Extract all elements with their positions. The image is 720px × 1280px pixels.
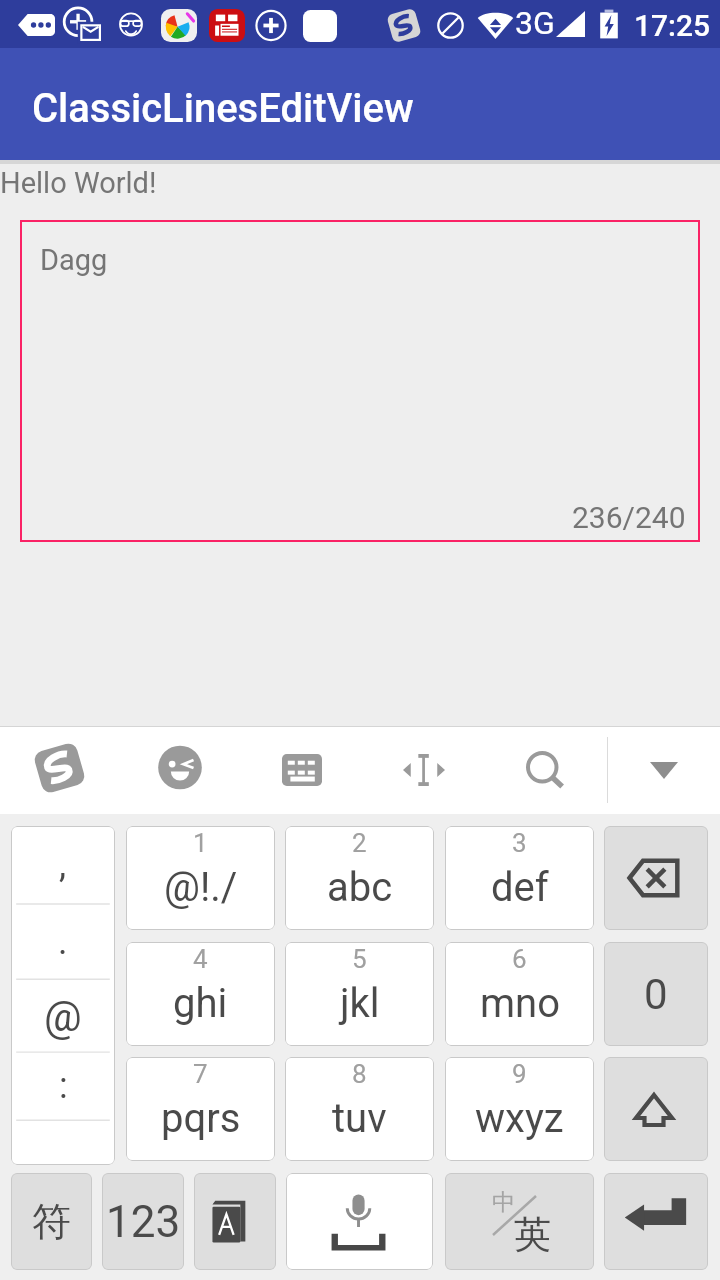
- button[interactable]: 123: [102, 1173, 184, 1270]
- button[interactable]: 0: [604, 942, 708, 1046]
- button[interactable]: Sogou input: [32, 742, 87, 794]
- staticText: tuv: [332, 1095, 387, 1142]
- button[interactable]: 6: [445, 942, 594, 1046]
- button[interactable]: Shift: [604, 1057, 708, 1161]
- staticText: ,: [59, 844, 67, 886]
- staticText: .: [58, 921, 68, 963]
- button[interactable]: 1: [126, 826, 275, 930]
- staticText: ClassicLinesEditView: [32, 85, 414, 132]
- button[interactable]: Space: [286, 1173, 433, 1270]
- staticText: ghi: [173, 980, 228, 1027]
- button[interactable]: 4: [126, 942, 275, 1046]
- button[interactable]: Move cursor: [403, 754, 445, 786]
- button[interactable]: Chinese English toggle: [445, 1173, 594, 1270]
- staticText: Hello World!: [0, 166, 157, 200]
- staticText: :: [59, 1065, 68, 1107]
- button[interactable]: Punctuation: [11, 826, 115, 1165]
- staticText: 8: [352, 1059, 367, 1089]
- button[interactable]: Backspace: [604, 826, 708, 930]
- staticText: 2: [352, 828, 367, 858]
- button[interactable]: Enter: [604, 1173, 708, 1270]
- staticText: 7: [193, 1059, 208, 1089]
- staticText: 3G: [515, 4, 555, 42]
- staticText: @: [44, 992, 82, 1041]
- staticText: Dagg: [40, 243, 108, 277]
- button[interactable]: 5: [285, 942, 434, 1046]
- staticText: 4: [193, 944, 208, 974]
- staticText: @!./: [164, 864, 238, 911]
- staticText: 6: [512, 944, 527, 974]
- staticText: 英: [514, 1211, 551, 1258]
- button[interactable]: Keyboard layout: [282, 754, 322, 786]
- staticText: mno: [480, 980, 560, 1027]
- staticText: 5: [352, 944, 367, 974]
- staticText: def: [491, 864, 549, 911]
- button[interactable]: 3: [445, 826, 594, 930]
- staticText: 0: [644, 970, 668, 1019]
- button[interactable]: 符: [11, 1173, 92, 1270]
- staticText: 1: [193, 828, 208, 858]
- staticText: 符: [32, 1197, 71, 1246]
- staticText: 123: [106, 1196, 181, 1248]
- button[interactable]: Search: [526, 751, 564, 788]
- staticText: 236/240: [572, 500, 686, 535]
- staticText: jkl: [340, 980, 380, 1027]
- staticText: pqrs: [161, 1095, 241, 1142]
- button[interactable]: More options: [650, 762, 678, 779]
- button[interactable]: Dictionary: [194, 1173, 276, 1270]
- staticText: 中: [492, 1188, 515, 1217]
- staticText: 17:25: [634, 8, 711, 43]
- button[interactable]: 2: [285, 826, 434, 930]
- staticText: abc: [327, 864, 393, 911]
- staticText: wxyz: [475, 1095, 564, 1142]
- button[interactable]: Emoji: [157, 745, 203, 790]
- button[interactable]: 7: [126, 1057, 275, 1161]
- staticText: 3: [512, 828, 527, 858]
- button[interactable]: 8: [285, 1057, 434, 1161]
- staticText: 9: [512, 1059, 527, 1089]
- button[interactable]: 9: [445, 1057, 594, 1161]
